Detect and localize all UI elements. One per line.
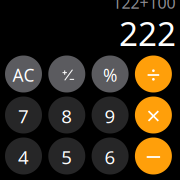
button[interactable]: AC — [5, 55, 42, 92]
staticText: % — [103, 63, 117, 86]
button[interactable]: 7 — [5, 96, 42, 133]
button[interactable]: 5 — [48, 137, 85, 174]
button[interactable]: 6 — [92, 137, 129, 174]
button[interactable]: 9 — [92, 96, 129, 133]
button[interactable]: Multiply — [135, 96, 172, 133]
staticText: 7 — [18, 104, 29, 128]
staticText: 5 — [61, 145, 72, 169]
staticText: 122+100 — [112, 0, 175, 13]
button[interactable]: Plus minus — [48, 55, 85, 92]
button[interactable]: Divide — [135, 55, 172, 92]
button[interactable]: Subtract — [135, 137, 172, 174]
staticText: 9 — [105, 104, 116, 128]
staticText: 6 — [105, 145, 116, 169]
button[interactable]: 8 — [48, 96, 85, 133]
button[interactable]: 4 — [5, 137, 42, 174]
staticText: 8 — [61, 104, 72, 128]
staticText: 4 — [18, 145, 29, 169]
staticText: 222 — [119, 11, 176, 55]
staticText: AC — [12, 63, 34, 86]
button[interactable]: % — [92, 55, 129, 92]
